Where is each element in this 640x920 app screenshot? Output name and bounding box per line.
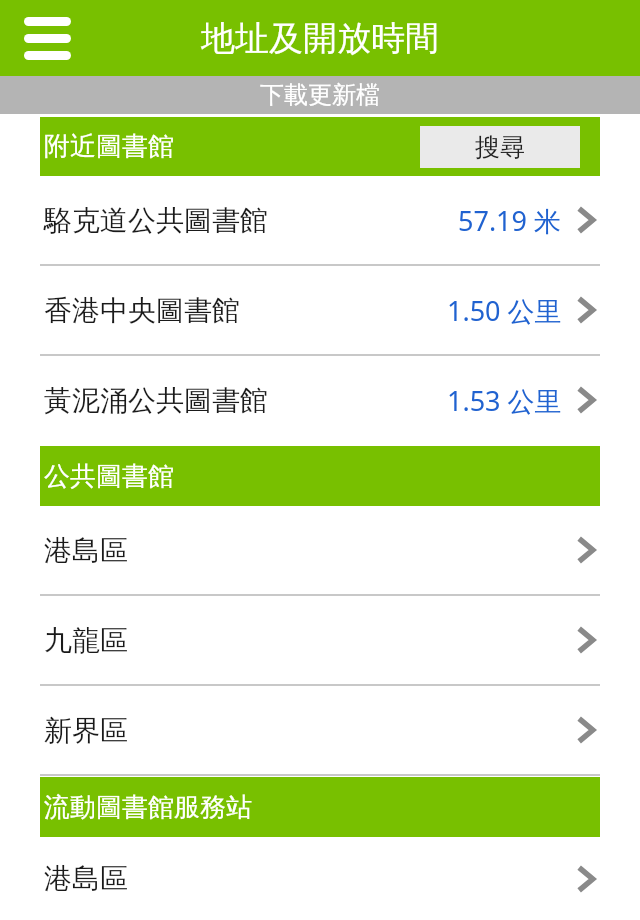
button[interactable]: 附近圖書館 (40, 117, 600, 176)
button[interactable]: 搜尋 (420, 126, 580, 168)
staticText: 黃泥涌公共圖書館 (44, 383, 268, 418)
button[interactable]: 駱克道公共圖書館 (0, 176, 640, 264)
staticText: 1.53 公里 (447, 382, 562, 419)
staticText: 香港中央圖書館 (44, 293, 240, 328)
staticText: 57.19 米 (458, 202, 562, 239)
button[interactable]: 新界區 (0, 686, 640, 774)
button[interactable]: 香港中央圖書館 (0, 266, 640, 354)
button[interactable]: 公共圖書館 (40, 446, 600, 506)
staticText: 流動圖書館服務站 (44, 791, 252, 824)
staticText: 公共圖書館 (44, 460, 174, 493)
staticText: 搜尋 (475, 132, 525, 163)
button[interactable]: Menu (14, 8, 80, 68)
staticText: 港島區 (44, 533, 128, 568)
staticText: 下載更新檔 (260, 80, 380, 110)
staticText: 九龍區 (44, 623, 128, 658)
staticText: 駱克道公共圖書館 (44, 203, 268, 238)
button[interactable]: 九龍區 (0, 596, 640, 684)
button[interactable]: 港島區 (0, 506, 640, 594)
button[interactable]: 港島區 (0, 837, 640, 920)
button[interactable]: 黃泥涌公共圖書館 (0, 356, 640, 444)
staticText: 1.50 公里 (447, 292, 562, 329)
staticText: 地址及開放時間 (201, 17, 439, 60)
staticText: 港島區 (44, 861, 128, 896)
button[interactable]: 下載更新檔 (0, 76, 640, 114)
staticText: 新界區 (44, 713, 128, 748)
staticText: 附近圖書館 (44, 130, 174, 163)
button[interactable]: 流動圖書館服務站 (40, 777, 600, 837)
